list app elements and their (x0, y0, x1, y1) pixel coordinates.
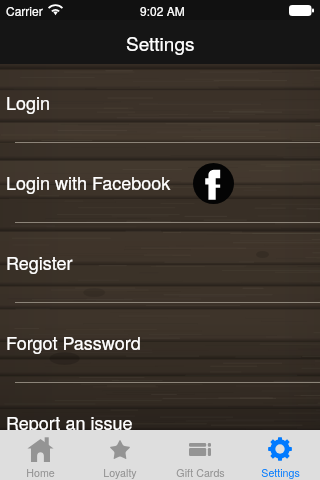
staticText: Report an issue (6, 409, 133, 430)
staticText: Login (6, 89, 51, 115)
staticText: Settings (261, 465, 300, 480)
staticText: Loyalty (103, 465, 137, 480)
staticText: Forgot Password (6, 329, 141, 355)
button[interactable]: Register (0, 223, 320, 303)
staticText: Register (6, 249, 73, 275)
button[interactable]: Loyalty (80, 430, 160, 480)
button[interactable]: Login with Facebook (193, 163, 234, 204)
button[interactable]: Login (0, 64, 320, 143)
button[interactable]: Gift Cards (160, 430, 240, 480)
staticText: 9:02 AM (140, 2, 185, 19)
staticText: Login with Facebook (6, 169, 171, 195)
button[interactable]: Settings (240, 430, 320, 480)
button[interactable]: Report an issue (0, 383, 320, 430)
staticText: Gift Cards (176, 465, 225, 480)
staticText: Settings (126, 29, 195, 56)
staticText: Carrier (6, 2, 43, 19)
button[interactable]: Forgot Password (0, 303, 320, 383)
staticText: Home (26, 465, 55, 480)
button[interactable]: Login with Facebook (0, 143, 320, 223)
button[interactable]: Home (0, 430, 80, 480)
